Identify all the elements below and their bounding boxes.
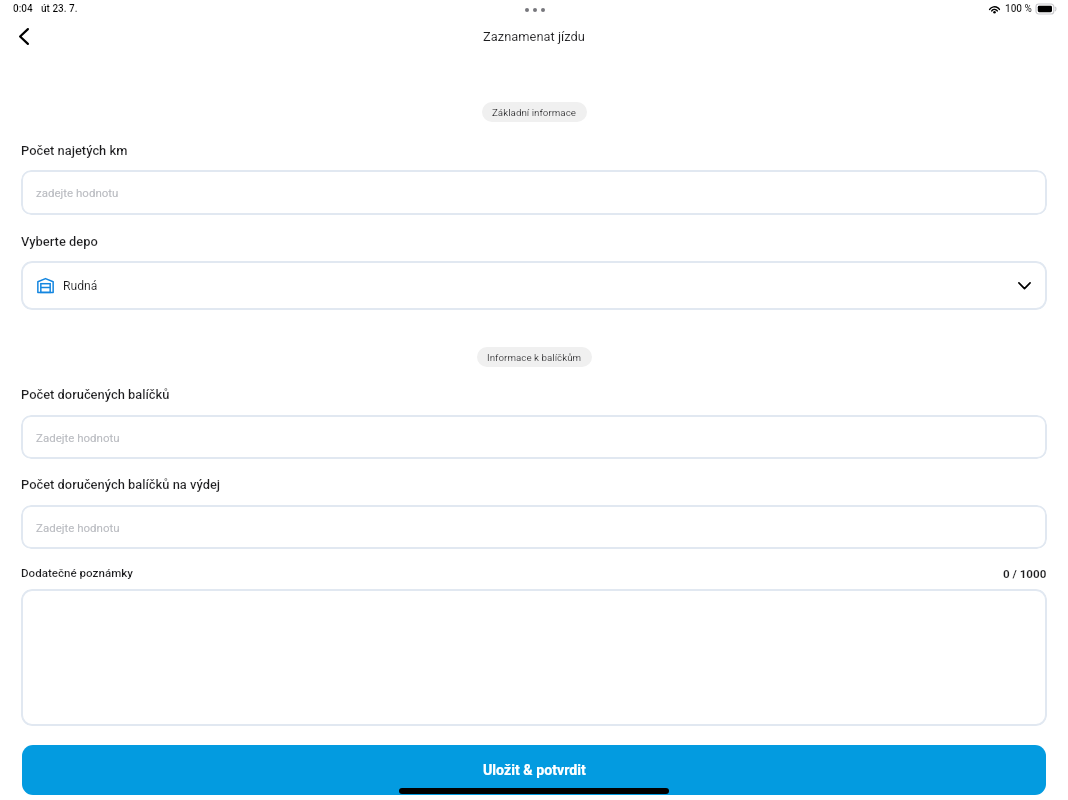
staticText: Uložit & potvrdit xyxy=(483,762,586,779)
staticText: Zadejte hodnotu xyxy=(36,521,120,534)
staticText: 0 / 1000 xyxy=(1003,567,1047,581)
button[interactable]: Rudná xyxy=(21,261,1047,310)
button[interactable]: Informace k balíčkům xyxy=(477,347,592,367)
staticText: Počet doručených balíčků xyxy=(21,387,170,402)
button[interactable]: Uložit & potvrdit xyxy=(22,745,1046,795)
staticText: Počet doručených balíčků na výdej xyxy=(21,477,221,492)
staticText: Základní informace xyxy=(492,107,577,118)
staticText: Zadejte hodnotu xyxy=(36,431,120,444)
staticText: 0:04 xyxy=(13,3,33,15)
staticText: zadejte hodnotu xyxy=(36,186,119,199)
button[interactable] xyxy=(21,589,1047,726)
staticText: Informace k balíčkům xyxy=(487,352,582,363)
staticText: Dodatečné poznámky xyxy=(21,566,133,580)
staticText: Vyberte depo xyxy=(21,234,98,249)
other: Vybrat depo xyxy=(1018,282,1031,290)
button[interactable]: Zpět xyxy=(6,18,42,54)
staticText: út 23. 7. xyxy=(41,3,78,15)
staticText: 100 % xyxy=(1005,3,1032,15)
button[interactable]: zadejte hodnotu xyxy=(21,170,1047,215)
staticText: Počet najetých km xyxy=(21,143,128,158)
staticText: Rudná xyxy=(63,279,98,293)
button[interactable]: Zadejte hodnotu xyxy=(21,415,1047,459)
button[interactable]: Základní informace xyxy=(482,102,587,122)
button[interactable]: Zadejte hodnotu xyxy=(21,505,1047,549)
staticText: Zaznamenat jízdu xyxy=(483,29,585,44)
